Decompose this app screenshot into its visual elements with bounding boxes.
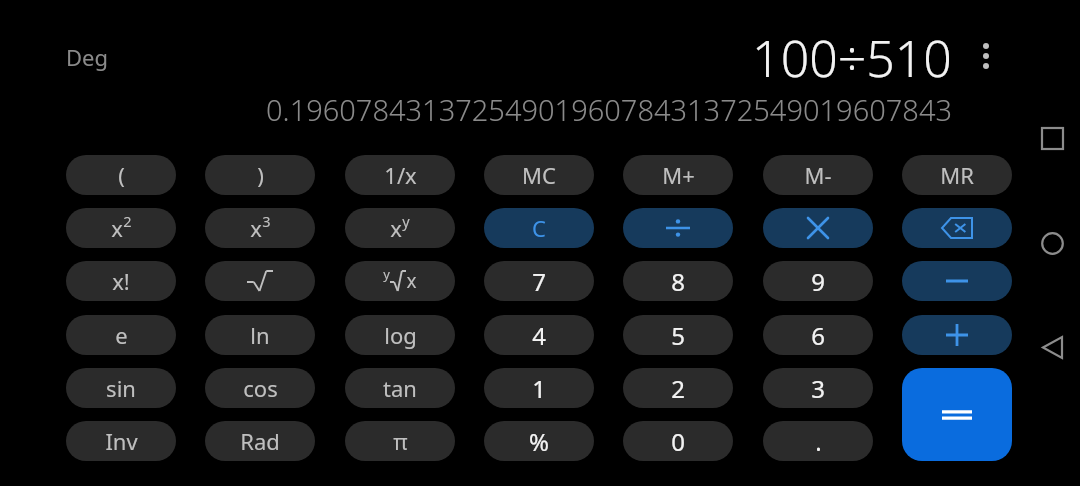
staticText: x [111, 213, 123, 243]
staticText: 7 [532, 265, 546, 298]
staticText: 2 [123, 211, 132, 231]
staticText: tan [383, 373, 417, 403]
staticText: x! [112, 266, 130, 296]
button[interactable]: tan [345, 368, 455, 408]
staticText: MR [940, 160, 974, 190]
button[interactable]: Multiply [763, 208, 873, 248]
button[interactable]: ( [66, 155, 176, 195]
button[interactable]: 9 [763, 261, 873, 301]
button[interactable]: 3 [763, 368, 873, 408]
staticText: 3 [262, 211, 271, 231]
button[interactable]: Divide [623, 208, 733, 248]
staticText: π [393, 426, 408, 456]
staticText: 6 [811, 319, 825, 352]
button[interactable]: Square root [205, 261, 315, 301]
button[interactable]: . [763, 421, 873, 461]
staticText: 100÷510 [752, 24, 952, 92]
button[interactable]: sin [66, 368, 176, 408]
staticText: 9 [811, 265, 825, 298]
button[interactable]: π [345, 421, 455, 461]
button[interactable]: 2 [623, 368, 733, 408]
button[interactable]: cos [205, 368, 315, 408]
staticText: log [384, 320, 417, 350]
staticText: 5 [671, 319, 685, 352]
staticText: 0 [671, 425, 685, 458]
staticText: sin [106, 373, 136, 403]
staticText: ) [257, 160, 264, 190]
button[interactable]: ln [205, 315, 315, 355]
button[interactable]: Recent apps [1030, 116, 1074, 160]
staticText: 8 [671, 265, 685, 298]
staticText: e [115, 320, 128, 350]
staticText: ln [250, 320, 270, 350]
button[interactable]: M+ [623, 155, 733, 195]
button[interactable]: x [345, 208, 455, 248]
staticText: 1 [532, 372, 546, 405]
button[interactable]: M- [763, 155, 873, 195]
button[interactable]: C [484, 208, 594, 248]
staticText: 4 [532, 319, 546, 352]
staticText: x [406, 268, 417, 294]
staticText: cos [243, 373, 278, 403]
staticText: y [402, 211, 410, 231]
staticText: Inv [105, 426, 138, 456]
button[interactable]: e [66, 315, 176, 355]
button[interactable]: Home [1030, 221, 1074, 265]
staticText: 3 [811, 372, 825, 405]
staticText: ( [118, 160, 125, 190]
button[interactable]: More options [966, 32, 1006, 80]
button[interactable]: log [345, 315, 455, 355]
staticText: M- [804, 160, 832, 190]
button[interactable]: 4 [484, 315, 594, 355]
button[interactable]: x! [66, 261, 176, 301]
button[interactable]: x [66, 208, 176, 248]
button[interactable]: Backspace [902, 208, 1012, 248]
button[interactable]: 6 [763, 315, 873, 355]
button[interactable]: 1 [484, 368, 594, 408]
staticText: C [532, 213, 546, 243]
staticText: % [529, 425, 549, 458]
button[interactable]: x [205, 208, 315, 248]
staticText: x [390, 213, 402, 243]
button[interactable]: Nth root [345, 261, 455, 301]
staticText: 1/x [384, 160, 417, 190]
staticText: y [383, 265, 390, 283]
button[interactable]: 0 [623, 421, 733, 461]
staticText: Rad [240, 426, 280, 456]
staticText: M+ [662, 160, 695, 190]
button[interactable]: 1/x [345, 155, 455, 195]
staticText: 2 [671, 372, 685, 405]
button[interactable]: Deg [64, 40, 110, 74]
button[interactable]: MC [484, 155, 594, 195]
staticText: Deg [66, 42, 108, 72]
staticText: . [815, 425, 822, 458]
button[interactable]: 5 [623, 315, 733, 355]
button[interactable]: 7 [484, 261, 594, 301]
staticText: x [250, 213, 262, 243]
button[interactable]: Inv [66, 421, 176, 461]
button[interactable]: Plus [902, 315, 1012, 355]
button[interactable]: ) [205, 155, 315, 195]
button[interactable]: Equals [902, 368, 1012, 461]
button[interactable]: Minus [902, 261, 1012, 301]
button[interactable]: MR [902, 155, 1012, 195]
button[interactable]: 8 [623, 261, 733, 301]
button[interactable]: Rad [205, 421, 315, 461]
button[interactable]: % [484, 421, 594, 461]
staticText: MC [522, 160, 556, 190]
button[interactable]: Back [1030, 325, 1074, 369]
staticText: 0.19607843137254901960784313725490196078… [266, 90, 952, 129]
